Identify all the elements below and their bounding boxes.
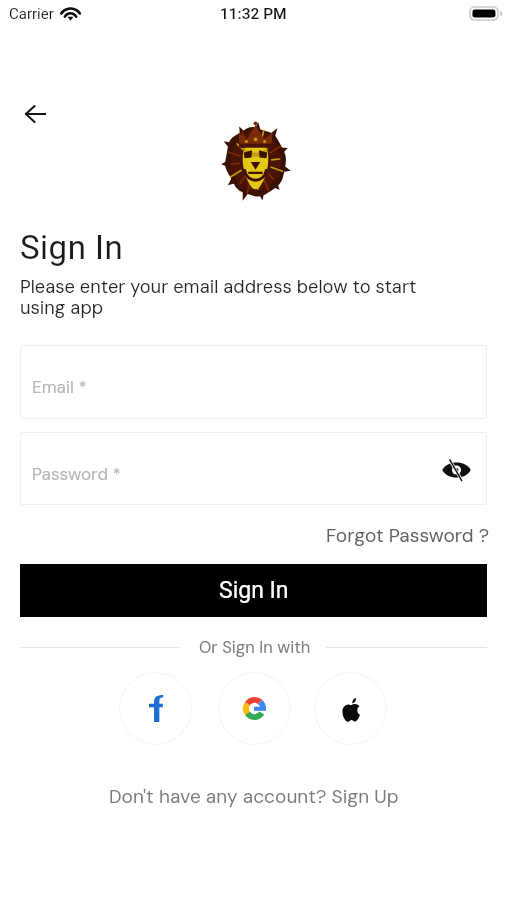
staticText: Sign In xyxy=(20,228,124,267)
staticText: Forgot Password ? xyxy=(326,523,490,548)
staticText: Sign In xyxy=(219,577,289,604)
button[interactable]: Password * xyxy=(20,432,487,505)
staticText: Email * xyxy=(32,376,87,398)
button[interactable]: Sign in with Google xyxy=(218,672,291,745)
button[interactable]: Forgot Password ? xyxy=(322,520,494,551)
staticText: 11:32 PM xyxy=(220,5,287,23)
staticText: Or Sign In with xyxy=(199,637,311,658)
button[interactable]: Sign In xyxy=(20,564,487,617)
staticText: Don't have any account? Sign Up xyxy=(109,784,399,809)
button[interactable]: Email * xyxy=(20,345,487,419)
button[interactable]: Back xyxy=(13,92,57,136)
button[interactable]: Don't have any account? Sign Up xyxy=(103,780,405,813)
staticText: Please enter your email address below to… xyxy=(20,275,434,320)
button[interactable]: Show password xyxy=(439,452,473,486)
button[interactable]: Sign in with Apple xyxy=(314,672,387,745)
staticText: Carrier xyxy=(9,5,54,23)
staticText: Password * xyxy=(32,463,121,485)
button[interactable]: Sign in with Facebook xyxy=(119,672,192,745)
